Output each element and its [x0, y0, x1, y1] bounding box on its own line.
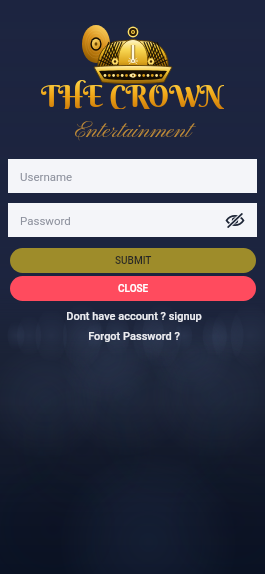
button[interactable]: Dont have account ? signup — [65, 310, 201, 323]
staticText: SUBMIT — [115, 255, 152, 267]
button[interactable]: Forgot Password ? — [87, 330, 179, 343]
button[interactable]: Show password — [224, 209, 246, 231]
button[interactable]: Password — [8, 203, 257, 237]
staticText: THE CROWN — [41, 79, 224, 109]
staticText: CLOSE — [118, 283, 149, 295]
button[interactable]: SUBMIT — [10, 248, 256, 273]
button[interactable]: Username — [8, 159, 257, 193]
staticText: Password — [20, 214, 71, 227]
button[interactable]: CLOSE — [10, 276, 256, 301]
staticText: Entertainment — [75, 117, 191, 146]
staticText: Username — [20, 170, 73, 183]
